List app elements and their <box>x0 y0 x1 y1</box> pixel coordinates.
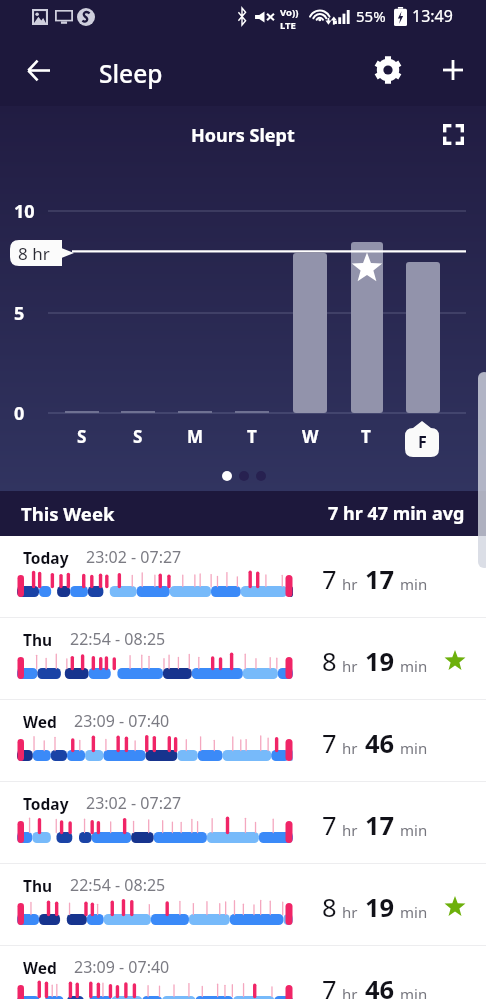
staticText: hr <box>342 902 358 922</box>
staticText: 55% <box>356 6 386 26</box>
button[interactable]: Back <box>14 46 62 94</box>
staticText: 22:54 - 08:25 <box>70 874 166 896</box>
staticText: 5 <box>14 301 25 326</box>
button[interactable]: Today <box>0 782 486 864</box>
staticText: M <box>187 425 204 448</box>
staticText: 19 <box>365 890 395 925</box>
button[interactable]: Today <box>0 536 486 618</box>
staticText: 7 <box>322 562 337 597</box>
button[interactable]: Add <box>429 46 477 94</box>
staticText: 22:54 - 08:25 <box>70 628 166 650</box>
staticText: 8 <box>322 890 337 925</box>
button[interactable]: Wed <box>0 946 486 999</box>
staticText: T <box>247 425 257 448</box>
staticText: Thu <box>23 629 53 650</box>
staticText: 7 hr 47 min avg <box>328 501 465 526</box>
staticText: min <box>400 738 428 758</box>
staticText: Today <box>23 793 69 814</box>
staticText: 46 <box>365 972 395 999</box>
staticText: 0 <box>14 401 25 426</box>
staticText: F <box>418 431 427 453</box>
staticText: 17 <box>365 562 395 597</box>
staticText: S <box>77 425 87 448</box>
staticText: 13:49 <box>412 5 453 27</box>
staticText: 10 <box>14 199 35 224</box>
staticText: Hours Slept <box>191 123 295 148</box>
staticText: 23:09 - 07:40 <box>74 710 170 732</box>
staticText: 46 <box>365 726 395 761</box>
staticText: 7 <box>322 808 337 843</box>
button[interactable]: Thu <box>0 618 486 700</box>
staticText: Wed <box>23 957 57 978</box>
staticText: hr <box>342 574 358 594</box>
staticText: 7 <box>322 972 337 999</box>
staticText: min <box>400 902 428 922</box>
staticText: hr <box>342 820 358 840</box>
button[interactable]: Settings <box>364 46 412 94</box>
staticText: min <box>400 984 428 999</box>
staticText: 19 <box>365 644 395 679</box>
button[interactable]: Thu <box>0 864 486 946</box>
staticText: 23:02 - 07:27 <box>86 792 182 814</box>
staticText: 23:02 - 07:27 <box>86 546 182 568</box>
staticText: S <box>133 425 143 448</box>
staticText: This Week <box>21 501 115 526</box>
staticText: Vo)) <box>280 6 299 19</box>
staticText: LTE <box>280 19 296 32</box>
staticText: min <box>400 574 428 594</box>
staticText: Today <box>23 547 69 568</box>
button[interactable]: This Week <box>0 491 486 536</box>
staticText: hr <box>342 656 358 676</box>
staticText: 7 <box>322 726 337 761</box>
staticText: hr <box>342 984 358 999</box>
staticText: 17 <box>365 808 395 843</box>
staticText: Wed <box>23 711 57 732</box>
button[interactable]: F <box>405 421 439 457</box>
staticText: W <box>302 425 319 448</box>
staticText: 8 <box>322 644 337 679</box>
button[interactable]: Wed <box>0 700 486 782</box>
staticText: hr <box>342 738 358 758</box>
staticText: 8 hr <box>18 242 50 265</box>
staticText: 23:09 - 07:40 <box>74 956 170 978</box>
staticText: T <box>361 425 371 448</box>
staticText: Sleep <box>99 57 163 90</box>
staticText: Thu <box>23 875 53 896</box>
staticText: min <box>400 820 428 840</box>
button[interactable]: Fullscreen <box>430 111 477 158</box>
staticText: min <box>400 656 428 676</box>
